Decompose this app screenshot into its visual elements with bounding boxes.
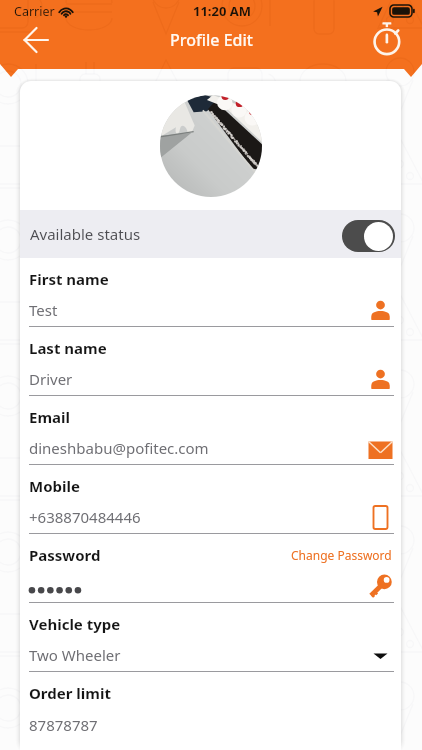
staticText: Two Wheeler <box>29 645 121 665</box>
staticText: Order limit <box>29 683 111 703</box>
staticText: Available status <box>30 224 141 244</box>
button[interactable]: +638870484446 <box>29 501 394 533</box>
staticText: Test <box>29 300 58 320</box>
staticText: 11:20 AM <box>193 2 252 20</box>
button[interactable]: Two Wheeler <box>29 639 394 671</box>
button[interactable]: Timer <box>368 16 408 60</box>
staticText: Vehicle type <box>29 614 121 634</box>
staticText: 87878787 <box>29 715 98 735</box>
staticText: dineshbabu@pofitec.com <box>29 438 209 458</box>
staticText: Carrier <box>14 3 55 20</box>
staticText: Email <box>29 407 70 427</box>
staticText: Driver <box>29 369 73 389</box>
staticText: Last name <box>29 338 107 358</box>
button[interactable]: Test <box>29 294 394 326</box>
staticText: Change Password <box>291 547 392 563</box>
button[interactable]: 87878787 <box>29 708 394 741</box>
staticText: +638870484446 <box>29 507 141 527</box>
staticText: Password <box>29 545 101 565</box>
button[interactable] <box>29 570 394 602</box>
button[interactable]: Profile photo <box>160 95 262 197</box>
staticText: Mobile <box>29 476 80 496</box>
button[interactable]: Available status <box>20 210 401 258</box>
button[interactable]: Back <box>13 17 58 62</box>
button[interactable]: Change Password <box>289 547 394 563</box>
staticText: First name <box>29 269 109 289</box>
button[interactable]: Driver <box>29 363 394 395</box>
staticText: Profile Edit <box>170 29 253 51</box>
button[interactable]: dineshbabu@pofitec.com <box>29 432 394 464</box>
